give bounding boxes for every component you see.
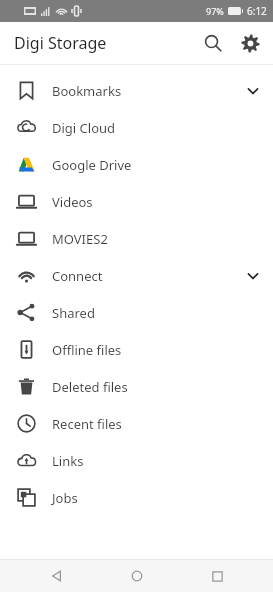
staticText: Digi Cloud — [52, 119, 116, 137]
staticText: 6:12 — [247, 4, 267, 18]
staticText: Jobs — [52, 489, 78, 507]
staticText: Videos — [52, 193, 93, 211]
staticText: Links — [52, 452, 84, 470]
button[interactable]: Deleted files — [0, 368, 273, 405]
button[interactable]: MOVIES2 — [0, 220, 273, 257]
button[interactable]: Search — [193, 23, 233, 63]
button[interactable]: Recent files — [0, 405, 273, 442]
button[interactable]: Offline files — [0, 331, 273, 368]
button[interactable]: Shared — [0, 294, 273, 331]
staticText: Recent files — [52, 415, 122, 433]
staticText: Offline files — [52, 341, 122, 359]
button[interactable]: Videos — [0, 183, 273, 220]
button[interactable]: Google Drive — [0, 146, 273, 183]
button[interactable]: Recent apps — [191, 560, 243, 592]
staticText: Deleted files — [52, 378, 128, 396]
button[interactable]: Bookmarks — [0, 72, 273, 109]
staticText: Bookmarks — [52, 82, 122, 100]
button[interactable]: Back — [31, 560, 83, 592]
staticText: MOVIES2 — [52, 230, 108, 248]
button[interactable]: Home — [111, 560, 163, 592]
staticText: Shared — [52, 304, 95, 322]
staticText: Google Drive — [52, 156, 132, 174]
button[interactable]: Connect — [0, 257, 273, 294]
button[interactable]: Digi Cloud — [0, 109, 273, 146]
button[interactable]: Settings — [233, 23, 267, 63]
button[interactable]: Links — [0, 442, 273, 479]
button[interactable]: Jobs — [0, 479, 273, 516]
staticText: Digi Storage — [14, 32, 107, 54]
staticText: 97% — [206, 5, 224, 17]
staticText: Connect — [52, 267, 103, 285]
